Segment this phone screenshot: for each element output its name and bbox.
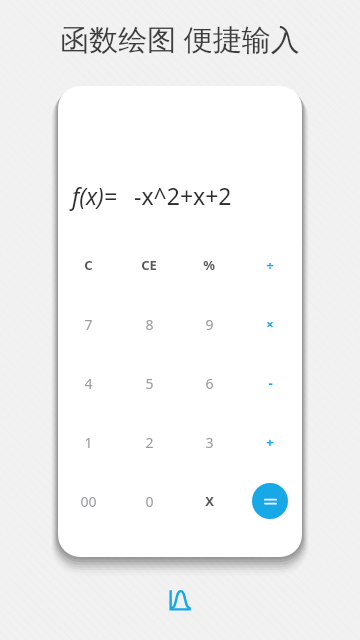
button[interactable]: 00 xyxy=(62,479,114,523)
staticText: ÷ xyxy=(266,256,274,274)
button[interactable]: f(x)= xyxy=(72,176,302,214)
button[interactable]: 2 xyxy=(123,420,175,464)
button[interactable]: 6 xyxy=(183,361,235,405)
staticText: × xyxy=(266,315,274,333)
button[interactable]: × xyxy=(244,302,296,346)
button[interactable]: ÷ xyxy=(244,243,296,287)
button[interactable]: X xyxy=(183,479,235,523)
staticText: 8 xyxy=(145,315,154,334)
button[interactable]: + xyxy=(244,420,296,464)
staticText: 1 xyxy=(84,433,93,452)
staticText: + xyxy=(266,433,274,451)
button[interactable]: CE xyxy=(123,243,175,287)
button[interactable]: C xyxy=(62,243,114,287)
staticText: C xyxy=(84,256,93,274)
staticText: % xyxy=(203,256,215,274)
staticText: - xyxy=(268,374,273,392)
button[interactable]: 9 xyxy=(183,302,235,346)
button[interactable]: 8 xyxy=(123,302,175,346)
button[interactable]: 1 xyxy=(62,420,114,464)
staticText: -x^2+x+2 xyxy=(134,180,232,211)
staticText: X xyxy=(205,492,214,510)
staticText: CE xyxy=(141,256,157,274)
button[interactable]: % xyxy=(183,243,235,287)
staticText: 00 xyxy=(80,492,97,511)
staticText: 0 xyxy=(145,492,154,511)
button[interactable]: Plot graph xyxy=(160,580,200,620)
staticText: 3 xyxy=(205,433,214,452)
button[interactable]: 5 xyxy=(123,361,175,405)
staticText: f(x)= xyxy=(72,180,117,211)
staticText: 7 xyxy=(84,315,93,334)
button[interactable]: 0 xyxy=(123,479,175,523)
staticText: 6 xyxy=(205,374,214,393)
staticText: 函数绘图 便捷输入 xyxy=(60,19,300,59)
button[interactable]: 7 xyxy=(62,302,114,346)
button[interactable]: - xyxy=(244,361,296,405)
staticText: 9 xyxy=(205,315,214,334)
staticText: 4 xyxy=(84,374,93,393)
staticText: 2 xyxy=(145,433,154,452)
button[interactable]: 4 xyxy=(62,361,114,405)
button[interactable]: Equals xyxy=(252,483,288,519)
staticText: 5 xyxy=(145,374,154,393)
button[interactable]: 3 xyxy=(183,420,235,464)
